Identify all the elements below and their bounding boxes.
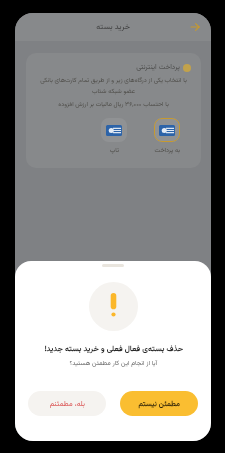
staticText: مطمئن نیستم xyxy=(138,398,180,410)
button[interactable]: مطمئن نیستم xyxy=(120,391,198,416)
staticText: بله، مطمئنم xyxy=(49,398,85,410)
button[interactable]: پرداخت اینترنتی xyxy=(26,53,201,168)
staticText: تاپ xyxy=(109,146,119,156)
staticText: حذف بسته‌ی فعال فعلی و خرید بسته جدید! xyxy=(44,343,183,356)
staticText: با احتساب ۳۶,۰۰۰ ریال مالیات بر ارزش افز… xyxy=(26,100,201,110)
button[interactable]: تاپ xyxy=(101,118,127,156)
staticText: آیا از انجام این کار مطمئن هستید؟ xyxy=(69,358,157,368)
button[interactable]: بله، مطمئنم xyxy=(28,391,106,416)
button[interactable]: به پرداخت xyxy=(154,118,180,156)
staticText: خرید بسته xyxy=(96,21,130,34)
staticText: با انتخاب یکی از درگاه‌های زیر و از طریق… xyxy=(26,76,201,96)
staticText: پرداخت اینترنتی xyxy=(136,62,180,73)
button[interactable]: Back xyxy=(187,19,203,35)
staticText: به پرداخت xyxy=(154,146,180,156)
